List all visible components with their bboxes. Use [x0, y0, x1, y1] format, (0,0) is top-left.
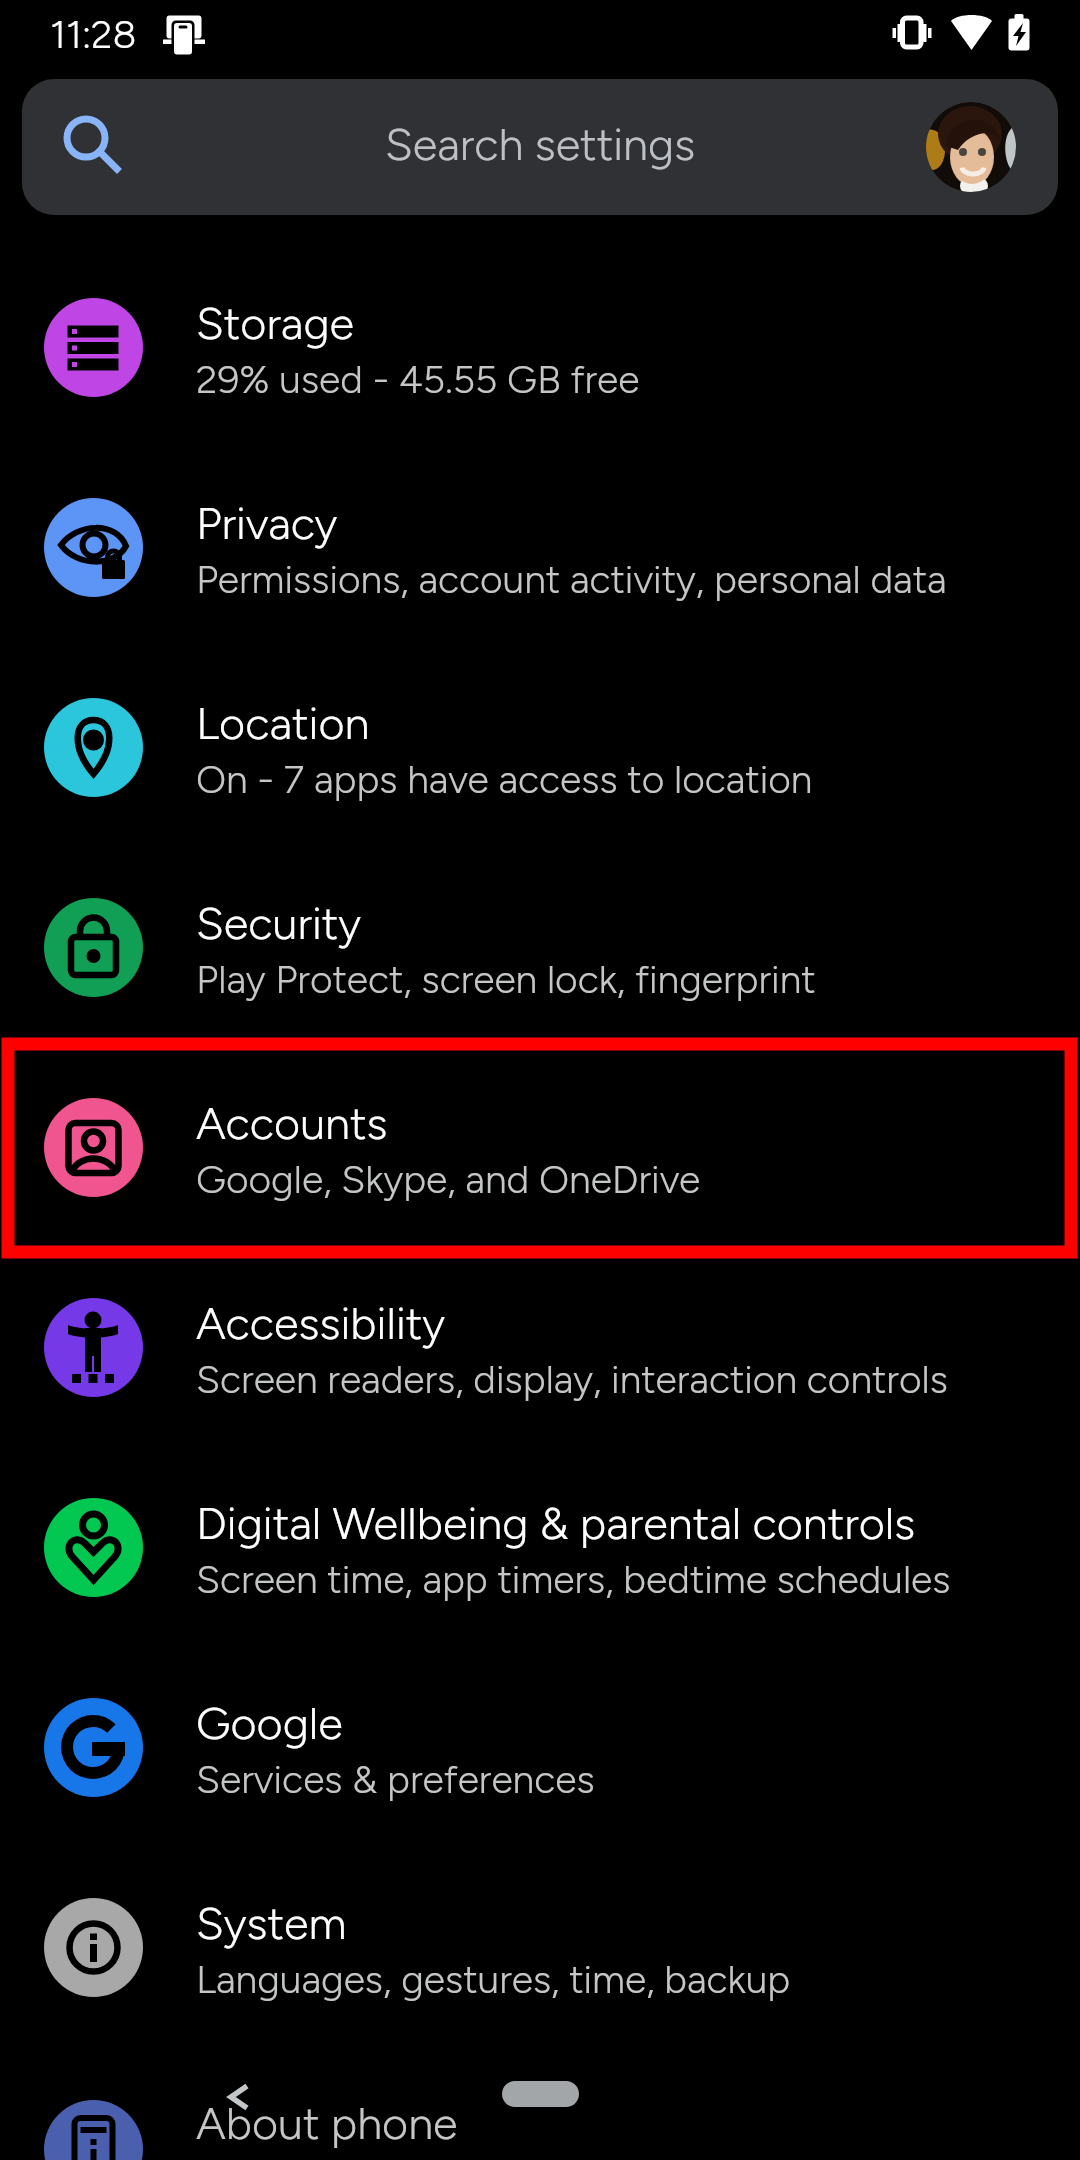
button[interactable]: Accessibility	[0, 1247, 1080, 1447]
staticText: Search settings	[385, 117, 696, 171]
staticText: Privacy	[196, 496, 338, 550]
button[interactable]: Accounts	[0, 1047, 1080, 1247]
staticText: Storage	[196, 296, 355, 350]
staticText: Services & preferences	[196, 1756, 595, 1803]
button[interactable]: Security	[0, 847, 1080, 1047]
button[interactable]: Google	[0, 1647, 1080, 1847]
staticText: Location	[196, 696, 370, 750]
staticText: About phone	[196, 2096, 458, 2150]
staticText: Screen time, app timers, bedtime schedul…	[196, 1556, 951, 1603]
staticText: 11:28	[50, 11, 137, 58]
staticText: Digital Wellbeing & parental controls	[196, 1496, 916, 1550]
staticText: Google, Skype, and OneDrive	[196, 1156, 701, 1203]
button[interactable]: Search settings	[22, 79, 1058, 215]
staticText: On - 7 apps have access to location	[196, 756, 813, 803]
staticText: Play Protect, screen lock, fingerprint	[196, 956, 816, 1003]
button[interactable]: Location	[0, 647, 1080, 847]
button[interactable]: Storage	[0, 247, 1080, 447]
button[interactable]: Home	[502, 2081, 579, 2107]
staticText: Permissions, account activity, personal …	[196, 556, 947, 603]
button[interactable]: Back	[211, 2066, 273, 2128]
staticText: Accounts	[196, 1096, 388, 1150]
staticText: Languages, gestures, time, backup	[196, 1956, 791, 2003]
button[interactable]: System	[0, 1847, 1080, 2047]
button[interactable]: Privacy	[0, 447, 1080, 647]
button[interactable]: About phone	[0, 2047, 1080, 2160]
staticText: Accessibility	[196, 1296, 446, 1350]
staticText: Screen readers, display, interaction con…	[196, 1356, 948, 1403]
staticText: System	[196, 1896, 347, 1950]
button[interactable]: Account profile	[926, 102, 1016, 192]
staticText: Security	[196, 896, 362, 950]
button[interactable]: Digital Wellbeing & parental controls	[0, 1447, 1080, 1647]
staticText: Google	[196, 1696, 343, 1750]
staticText: 29% used - 45.55 GB free	[196, 356, 640, 403]
